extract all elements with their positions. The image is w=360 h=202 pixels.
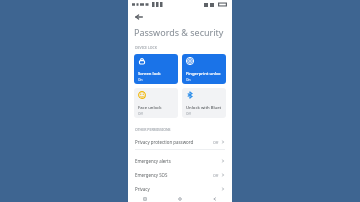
button[interactable]: Back: [197, 196, 232, 202]
button[interactable]: Emergency SOS: [128, 168, 232, 182]
staticText: On: [138, 78, 143, 82]
staticText: Passwords & security: [134, 26, 224, 38]
staticText: Off: [213, 173, 219, 178]
staticText: Screen lock: [138, 71, 161, 77]
button[interactable]: Screen lock: [134, 54, 178, 84]
button[interactable]: Home: [162, 196, 197, 202]
button[interactable]: Emergency alerts: [128, 154, 232, 168]
button[interactable]: Face unlock: [134, 88, 178, 118]
button[interactable]: Privacy: [128, 182, 232, 196]
staticText: Off: [138, 112, 143, 116]
staticText: Off: [186, 112, 191, 116]
staticText: Face unlock: [138, 105, 162, 111]
staticText: Emergency SOS: [135, 172, 168, 178]
staticText: Privacy protection password: [135, 139, 194, 145]
button[interactable]: Recents: [128, 196, 162, 202]
button[interactable]: Fingerprint unloc: [182, 54, 226, 84]
button[interactable]: Privacy protection password: [128, 135, 232, 149]
staticText: Privacy: [135, 186, 150, 192]
button[interactable]: Unlock with Bluet: [182, 88, 226, 118]
staticText: DEVICE LOCK: [135, 45, 157, 50]
staticText: OTHER PERMISSIONS: [135, 127, 171, 132]
staticText: Unlock with Bluet: [186, 105, 222, 111]
staticText: Emergency alerts: [135, 158, 171, 164]
staticText: On: [186, 78, 191, 82]
staticText: Fingerprint unloc: [186, 71, 221, 77]
button[interactable]: Back: [133, 11, 145, 23]
staticText: Off: [213, 140, 219, 145]
